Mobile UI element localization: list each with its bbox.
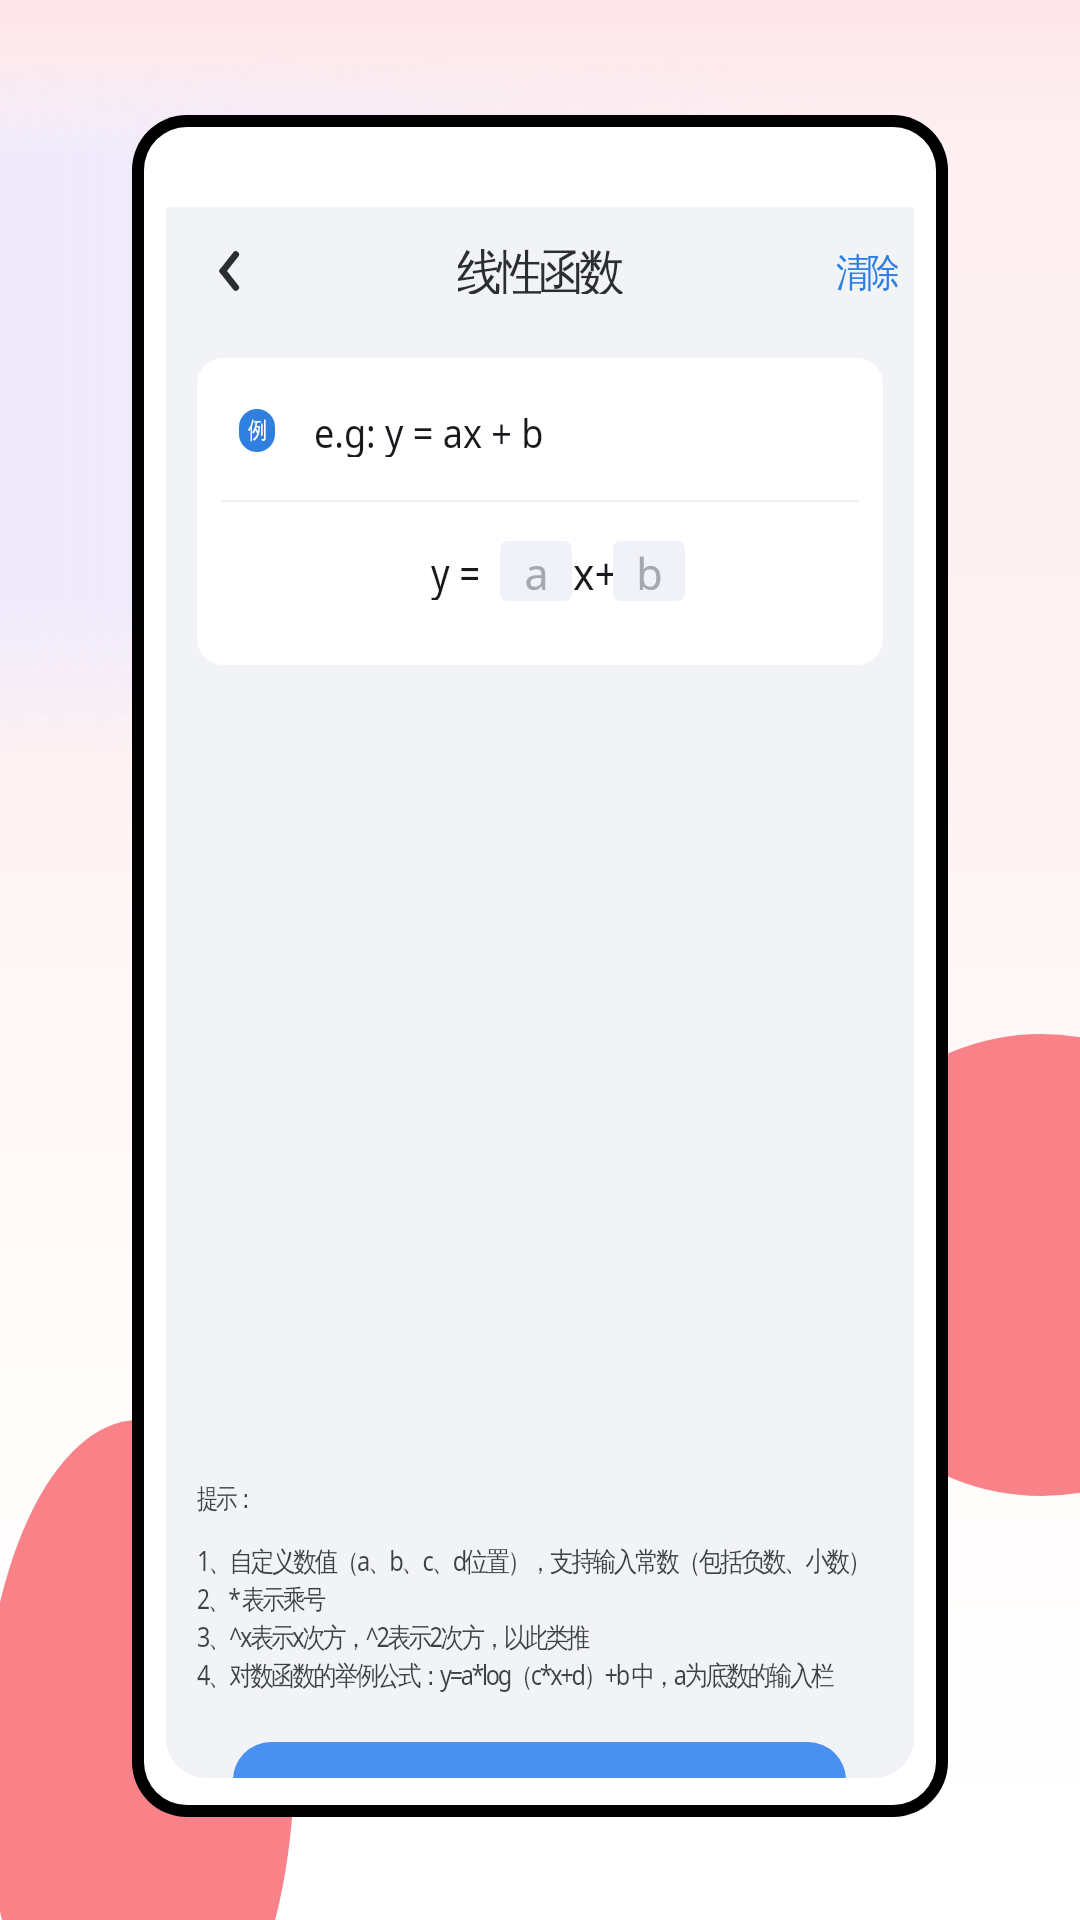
staticText: y = — [431, 544, 480, 600]
staticText: a — [524, 544, 549, 601]
button[interactable]: a — [500, 541, 572, 601]
button[interactable]: Back — [188, 240, 250, 302]
staticText: 1、自定义数值（a、b、c、d位置），支持输入常数（包括负数、小数） — [197, 1542, 869, 1579]
staticText: 2、* 表示乘号 — [197, 1580, 324, 1617]
staticText: 4、对数函数的举例公式：y=a*log（c*x+d）+b 中，a为底数的输入栏 — [197, 1656, 832, 1693]
staticText: 例 — [248, 416, 267, 445]
staticText: 线性函数 — [458, 242, 623, 294]
staticText: 清除 — [836, 248, 898, 292]
staticText: 3、^x表示x次方，^2表示2次方，以此类推 — [197, 1618, 588, 1655]
staticText: b — [636, 544, 663, 601]
staticText: 提示： — [197, 1482, 255, 1516]
button[interactable]: Confirm — [233, 1742, 846, 1778]
staticText: x+ — [573, 544, 618, 600]
button[interactable]: 清除 — [836, 248, 908, 292]
button[interactable]: b — [613, 541, 685, 601]
staticText: e.g: y = ax + b — [314, 405, 543, 457]
